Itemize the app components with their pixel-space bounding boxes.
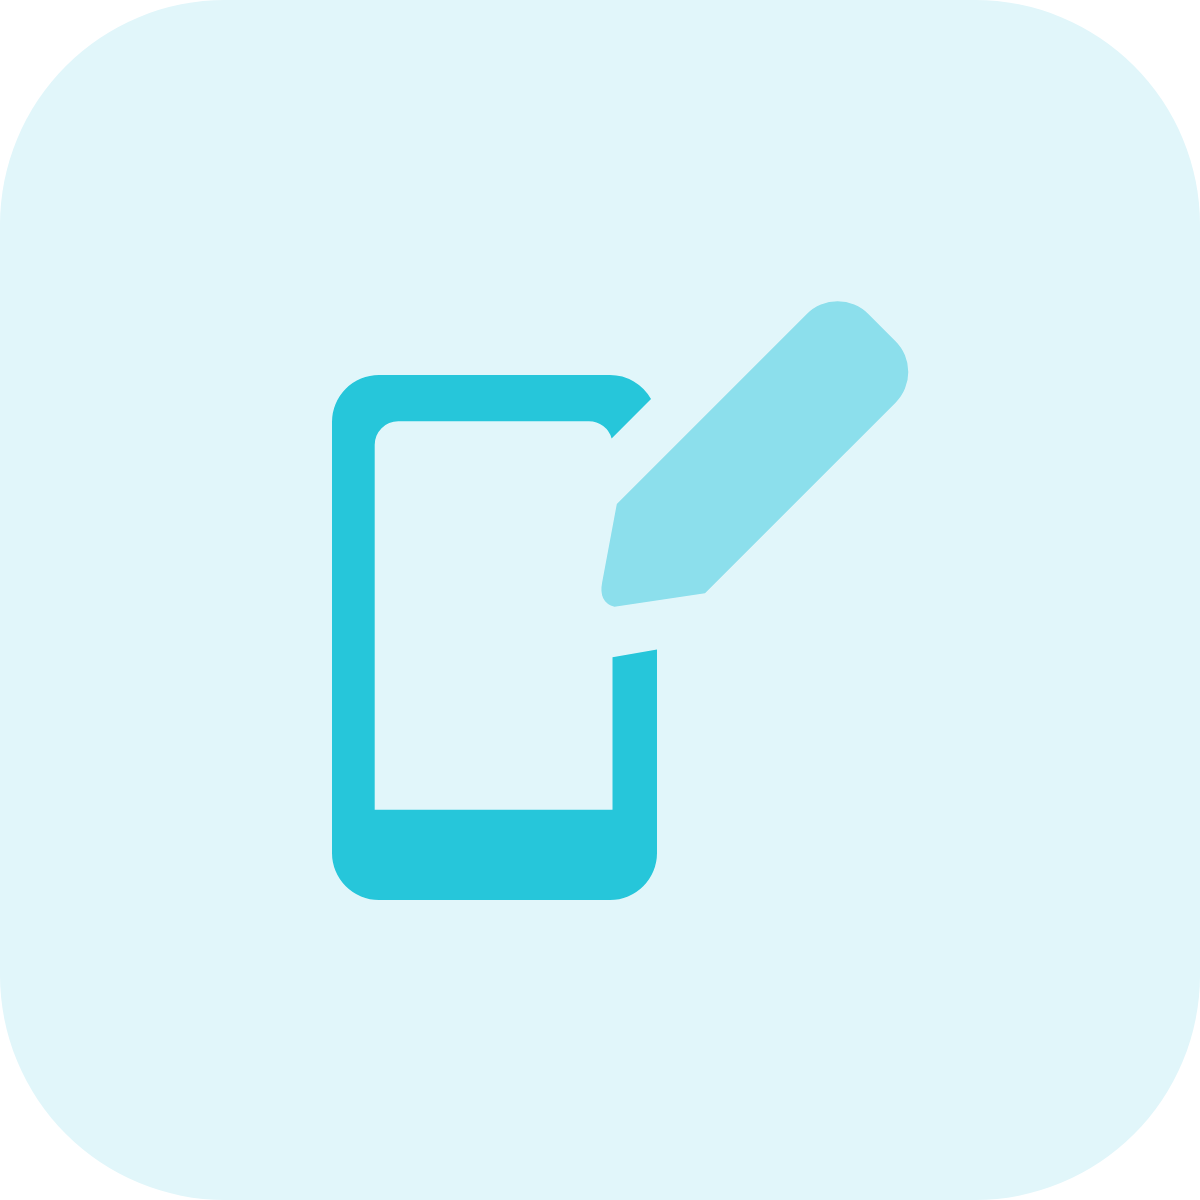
button[interactable]: Compose a note [0, 0, 1200, 1200]
